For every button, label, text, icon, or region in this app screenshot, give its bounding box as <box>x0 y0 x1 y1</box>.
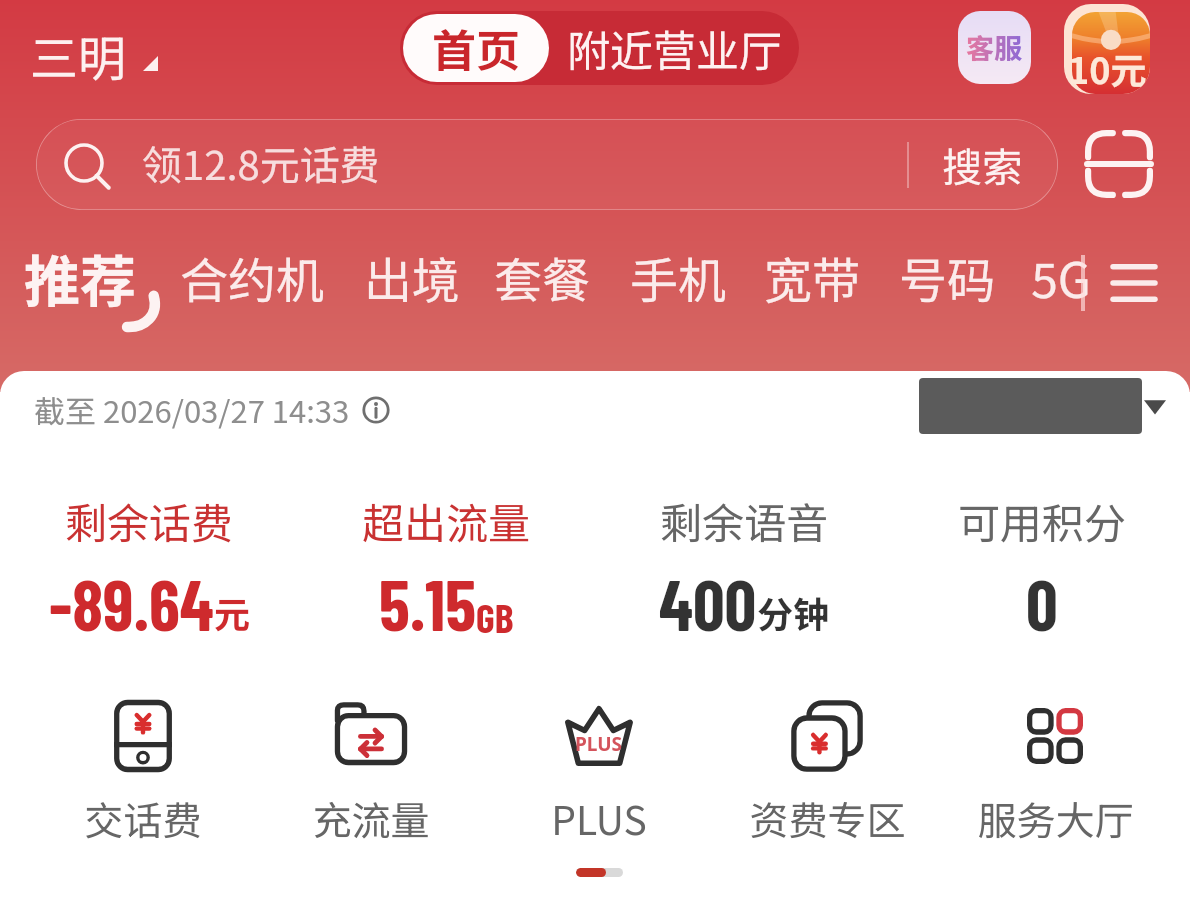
staticText: 剩余话费 <box>65 490 234 551</box>
staticText: 剩余语音 <box>660 490 829 551</box>
button[interactable]: 超出流量 <box>298 490 595 645</box>
staticText: PLUS <box>551 790 647 846</box>
button[interactable] <box>919 378 1142 434</box>
staticText: 附近营业厅 <box>567 17 782 79</box>
button[interactable]: 首页 <box>403 14 549 82</box>
button[interactable]: 合约机 <box>168 234 337 320</box>
button[interactable]: 充流量 <box>257 696 485 846</box>
staticText: 可用积分 <box>958 490 1127 551</box>
button[interactable]: PLUS <box>485 696 713 846</box>
staticText: 充流量 <box>312 790 430 846</box>
staticText: 号码 <box>899 242 996 312</box>
staticText: 合约机 <box>180 242 325 312</box>
staticText: 手机 <box>630 242 727 312</box>
button[interactable]: 客服 <box>958 11 1031 84</box>
button[interactable]: 宽带 <box>752 234 873 320</box>
staticText: 交话费 <box>84 790 202 846</box>
staticText: 套餐 <box>494 242 591 312</box>
button[interactable]: Scan QR code <box>1085 130 1153 198</box>
staticText: 超出流量 <box>362 490 531 551</box>
staticText: 10元 <box>1068 42 1147 94</box>
staticText: 5.15 <box>379 561 476 645</box>
button[interactable]: 服务大厅 <box>941 696 1169 846</box>
button[interactable]: 领12.8元话费 <box>36 119 1058 210</box>
button[interactable]: 三明 <box>30 20 158 90</box>
staticText: -89.64 <box>49 561 214 645</box>
button[interactable]: 10元 <box>1064 4 1150 94</box>
staticText: 0 <box>1026 561 1058 645</box>
staticText: 首页 <box>432 16 520 80</box>
staticText: 5G <box>1031 242 1091 312</box>
staticText: 领12.8元话费 <box>142 134 380 192</box>
staticText: 搜索 <box>942 136 1022 194</box>
staticText: GB <box>476 593 514 641</box>
button[interactable]: All categories <box>1101 250 1167 316</box>
button[interactable]: 推荐 <box>24 237 136 318</box>
staticText: 400 <box>659 561 757 645</box>
staticText: PLUS <box>575 731 623 757</box>
staticText: 客服 <box>966 27 1023 68</box>
button[interactable]: 交话费 <box>29 696 257 846</box>
button[interactable]: 剩余语音 <box>595 490 893 645</box>
button[interactable]: Switch account <box>1144 398 1166 416</box>
button[interactable]: 搜索 <box>920 119 1044 210</box>
staticText: 截至 2026/03/27 14:33 <box>34 387 350 432</box>
button[interactable]: 号码 <box>887 234 1008 320</box>
staticText: 出境 <box>364 242 461 312</box>
button[interactable]: 手机 <box>618 234 739 320</box>
staticText: 推荐 <box>24 237 136 318</box>
button[interactable]: 资费专区 <box>713 696 941 846</box>
button[interactable]: 套餐 <box>482 234 603 320</box>
button[interactable]: 出境 <box>352 234 473 320</box>
button[interactable]: 5G <box>1021 234 1101 320</box>
staticText: 元 <box>214 586 251 638</box>
staticText: 宽带 <box>764 242 861 312</box>
staticText: 服务大厅 <box>977 790 1134 846</box>
button[interactable]: 可用积分 <box>893 490 1190 645</box>
staticText: 三明 <box>30 20 127 90</box>
staticText: 资费专区 <box>749 790 906 846</box>
button[interactable]: 剩余话费 <box>1 490 298 645</box>
staticText: 分钟 <box>757 586 830 638</box>
button[interactable]: 附近营业厅 <box>549 11 799 85</box>
